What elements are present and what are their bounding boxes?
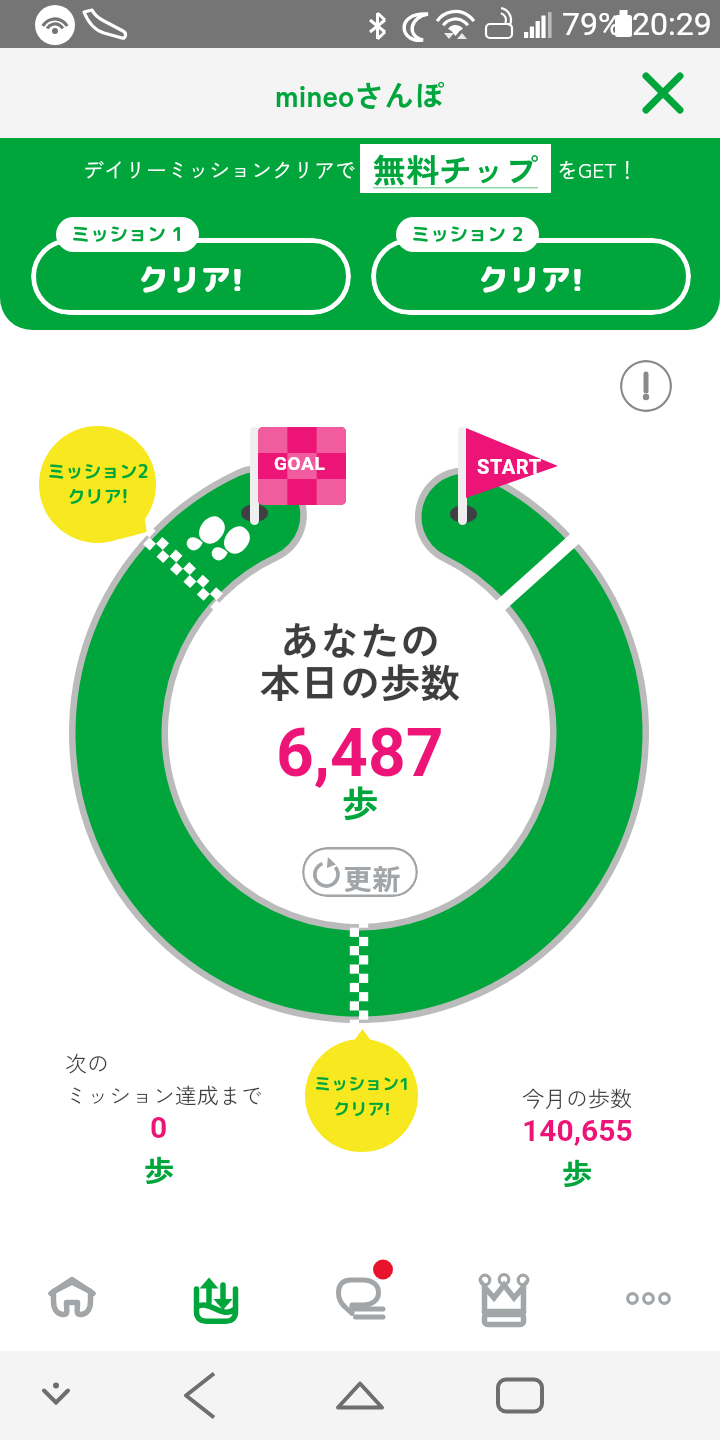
staticText: 140,655 [522,1113,633,1148]
staticText: をGET！ [557,154,638,184]
staticText: 歩 [562,1150,592,1193]
staticText: 6,487 [276,715,444,792]
staticText: 歩 [144,1147,174,1190]
staticText: GOAL [274,452,326,474]
staticText: クリア! [478,258,584,301]
staticText: クリア! [138,258,244,301]
staticText: 0 [150,1110,168,1145]
staticText: ミッション 2 [411,221,524,248]
staticText: ミッション 1 [71,221,184,248]
staticText: START [477,455,542,478]
staticText: ミッション2 クリア! [47,459,149,509]
staticText: 無料チップ [373,145,538,193]
button[interactable]: クリア! [31,238,351,315]
staticText: デイリーミッションクリアで [83,154,356,184]
button[interactable]: Data [144,1230,288,1351]
staticText: 20:29 [632,5,712,43]
staticText: 歩 [342,775,379,827]
button[interactable]: Ranking [432,1230,576,1351]
button[interactable]: クリア! [371,238,691,315]
button[interactable]: Home [0,1230,144,1351]
button[interactable]: Information [620,360,672,412]
staticText: あなたの 本日の歩数 [260,610,460,709]
staticText: 79% [562,5,622,43]
staticText: ミッション1 クリア! [314,1072,410,1120]
button[interactable]: Close [636,66,690,120]
button[interactable]: More [576,1230,720,1351]
staticText: 次の ミッション達成まで [65,1046,264,1110]
button[interactable]: Messages [288,1230,432,1351]
staticText: mineoさんぽ [275,72,445,115]
staticText: 更新 [343,856,402,897]
staticText: 今月の歩数 [522,1081,633,1113]
button[interactable]: 更新 [302,847,418,897]
